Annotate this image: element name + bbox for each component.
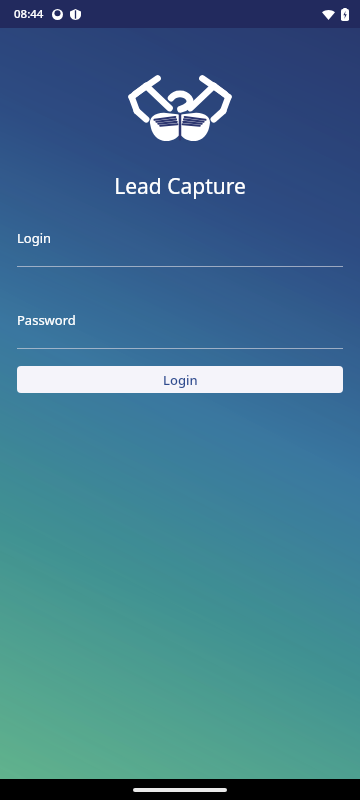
button[interactable]: Password: [17, 311, 343, 349]
staticText: 08:44: [14, 6, 44, 22]
button[interactable]: Login: [17, 229, 343, 267]
staticText: Login: [163, 371, 198, 389]
button[interactable]: Login: [17, 366, 343, 393]
other: Lead Capture logo: [128, 76, 232, 146]
staticText: Lead Capture: [17, 172, 343, 201]
staticText: Login: [17, 229, 52, 247]
staticText: Password: [17, 311, 76, 329]
